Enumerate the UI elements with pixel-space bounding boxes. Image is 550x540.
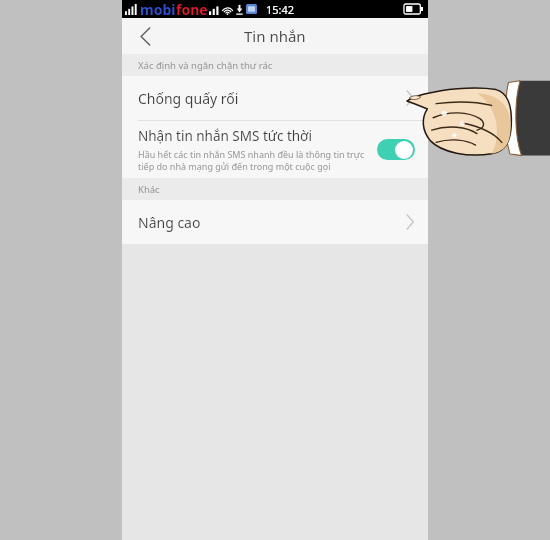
button[interactable]: Nhận tin nhắn SMS tức thời [122,121,428,178]
staticText: Chống quấy rối [138,89,406,108]
staticText: Xác định và ngăn chặn thư rác [138,59,273,72]
button[interactable]: Back [130,21,160,51]
staticText: 15:42 [266,2,295,17]
staticText: tiếp do nhà mạng gửi đến trong một cuộc … [138,160,331,172]
staticText: mobi [140,0,176,18]
staticText: Tin nhắn [244,26,306,46]
staticText: Hầu hết các tin nhắn SMS nhanh đều là th… [138,148,365,160]
button[interactable]: Instant SMS toggle, on [377,139,415,160]
staticText: Nhận tin nhắn SMS tức thời [138,127,312,145]
button[interactable]: Chống quấy rối [122,76,428,120]
staticText: Khác [138,183,160,196]
staticText: fone [176,0,208,18]
staticText: Nâng cao [138,213,406,232]
button[interactable]: Nâng cao [122,200,428,244]
